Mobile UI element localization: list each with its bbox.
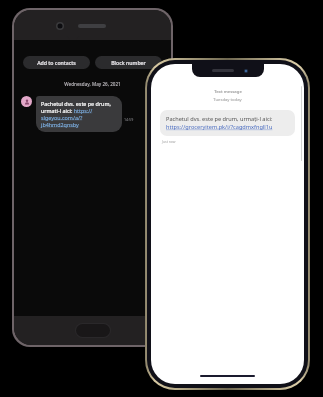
button[interactable]: Block number <box>95 56 162 69</box>
button[interactable]: Pachetul dvs. este pe drum, urmati-l aic… <box>36 96 122 132</box>
staticText: Pachetul dvs. este pe drum, urmati-l aic… <box>41 100 117 128</box>
staticText: Add to contacts <box>37 59 76 66</box>
button[interactable]: Home <box>75 323 111 338</box>
staticText: Pachetul dvs. este pe drum, urmați-l aic… <box>166 115 273 131</box>
staticText: 14:59 <box>124 117 134 122</box>
button[interactable]: Add to contacts <box>23 56 90 69</box>
staticText: Text message <box>214 89 242 95</box>
staticText: Just now <box>162 139 176 144</box>
staticText: Tuesday today <box>213 97 242 103</box>
staticText: Block number <box>111 59 146 66</box>
staticText: Wednesday, May 26, 2021 <box>64 81 121 87</box>
button[interactable]: Pachetul dvs. este pe drum, urmați-l aic… <box>160 110 295 136</box>
